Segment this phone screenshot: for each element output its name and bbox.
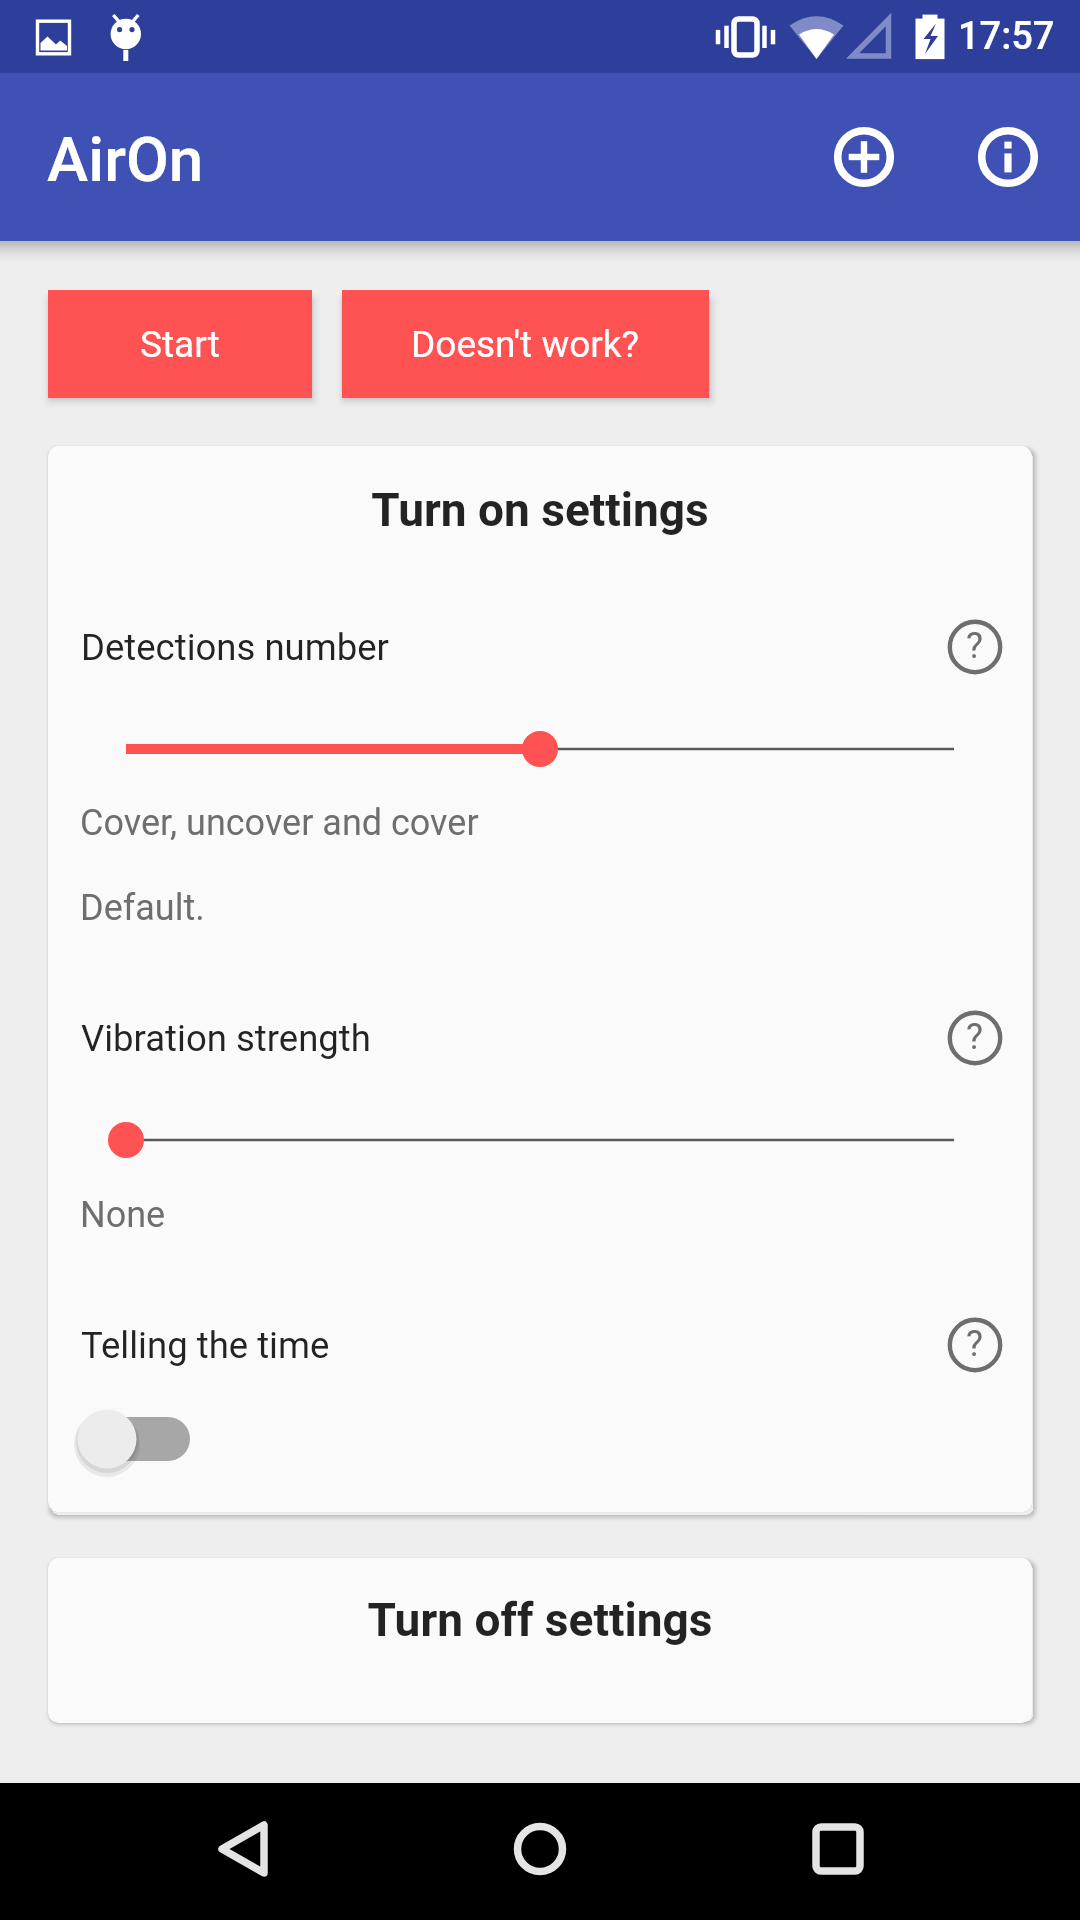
staticText: None <box>80 1194 166 1236</box>
staticText: AirOn <box>47 123 204 196</box>
button[interactable] <box>48 730 1032 768</box>
button[interactable]: Turn off settings <box>48 1558 1032 1723</box>
button[interactable]: Help <box>940 1012 1010 1064</box>
button[interactable]: Recents <box>783 1794 893 1904</box>
button[interactable]: Add <box>792 85 936 229</box>
staticText: ? <box>966 1016 984 1058</box>
staticText: Default. <box>80 887 205 929</box>
staticText: Start <box>140 323 220 366</box>
button[interactable] <box>48 1121 1032 1159</box>
staticText: 17:57 <box>958 14 1055 59</box>
button[interactable]: Help <box>940 1319 1010 1371</box>
button[interactable]: Info <box>936 85 1080 229</box>
staticText: Vibration strength <box>81 1017 371 1060</box>
staticText: Turn off settings <box>48 1593 1032 1647</box>
staticText: ? <box>966 625 984 667</box>
staticText: Telling the time <box>81 1324 330 1367</box>
staticText: Cover, uncover and cover <box>80 802 479 844</box>
staticText: ? <box>966 1323 984 1365</box>
staticText: Turn on settings <box>48 483 1032 537</box>
button[interactable]: Home <box>485 1794 595 1904</box>
button[interactable]: Back <box>188 1794 298 1904</box>
staticText: Doesn't work? <box>411 323 640 366</box>
button[interactable]: Doesn't work? <box>342 290 709 398</box>
staticText: Detections number <box>81 626 389 669</box>
button[interactable]: Start <box>48 290 312 398</box>
button[interactable] <box>78 1396 248 1482</box>
button[interactable]: Help <box>940 621 1010 673</box>
